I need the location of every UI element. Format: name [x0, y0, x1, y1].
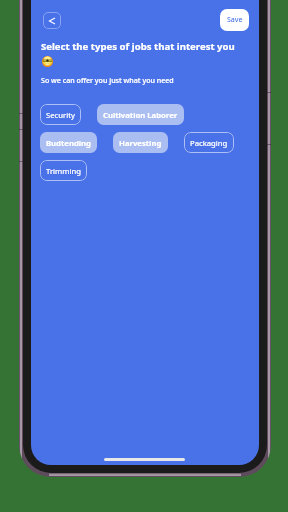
staticText: So we can offer you just what you need [41, 75, 174, 85]
button[interactable]: Cultivation Laborer [97, 104, 184, 125]
staticText: Trimming [46, 166, 81, 176]
staticText: Security [46, 110, 75, 120]
staticText: Select the types of jobs that interest y… [41, 40, 235, 53]
button[interactable]: Harvesting [113, 132, 168, 153]
staticText: Packaging [190, 138, 228, 148]
staticText: Harvesting [119, 138, 162, 148]
button[interactable]: Packaging [184, 132, 234, 153]
staticText: Budtending [46, 138, 91, 148]
button[interactable]: Back [43, 12, 61, 29]
button[interactable]: Security [40, 104, 81, 125]
button[interactable]: Budtending [40, 132, 97, 153]
button[interactable]: Save [220, 9, 249, 31]
staticText: Save [227, 15, 243, 25]
button[interactable]: Trimming [40, 160, 87, 181]
staticText: Cultivation Laborer [103, 110, 178, 120]
